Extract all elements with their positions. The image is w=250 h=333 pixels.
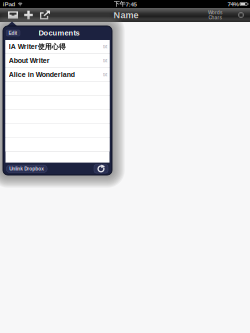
staticText: 74% <box>227 1 238 7</box>
button[interactable]: Edit <box>6 30 20 36</box>
staticText: 下午7:45 <box>113 0 136 8</box>
button[interactable]: New document <box>21 8 36 22</box>
button[interactable]: Documents <box>5 8 20 22</box>
staticText: Alice in Wonderland <box>9 71 75 78</box>
staticText: Words <box>208 10 222 15</box>
staticText: Documents <box>38 29 79 37</box>
button[interactable]: Unlink Dropbox <box>6 165 47 172</box>
staticText: IA Writer使用心得 <box>9 42 66 51</box>
staticText: Edit <box>9 30 18 36</box>
staticText: iPad <box>2 1 15 7</box>
button[interactable]: IA Writer使用心得 <box>5 40 109 53</box>
staticText: About Writer <box>9 57 50 64</box>
button[interactable]: Alice in Wonderland <box>5 68 109 81</box>
button[interactable]: Share <box>37 8 52 22</box>
staticText: Chars <box>208 15 221 20</box>
staticText: Unlink Dropbox <box>9 166 44 171</box>
staticText: txt <box>103 72 107 77</box>
button[interactable]: About Writer <box>5 54 109 67</box>
staticText: Name <box>113 10 138 20</box>
button[interactable]: Refresh <box>94 164 108 173</box>
button[interactable]: Word count <box>235 8 247 22</box>
staticText: txt <box>103 58 107 63</box>
staticText: txt <box>103 44 107 49</box>
